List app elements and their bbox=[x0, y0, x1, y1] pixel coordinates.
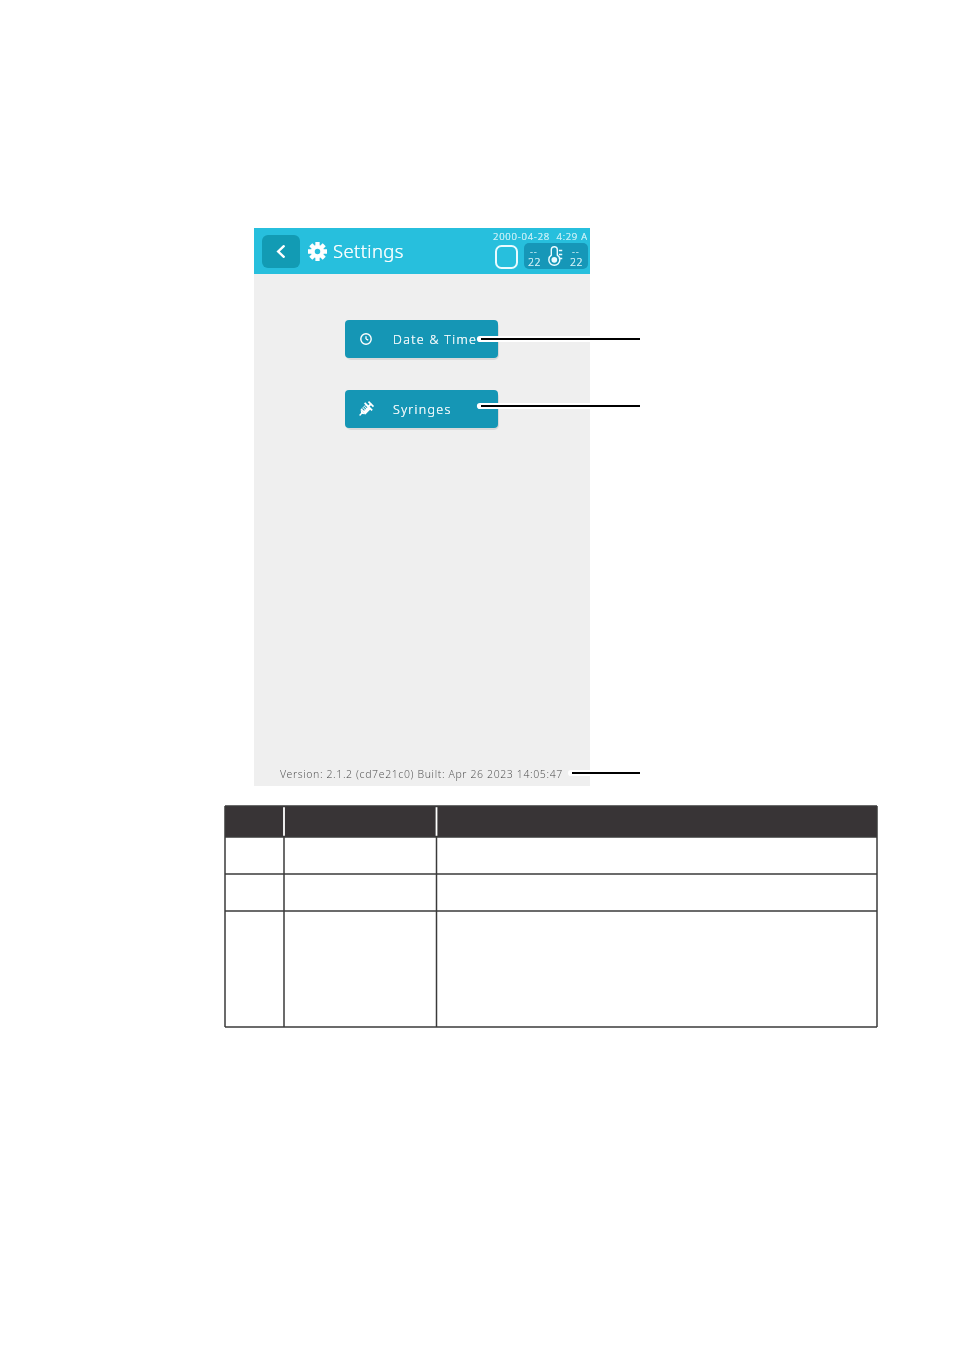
button[interactable]: Back bbox=[262, 235, 300, 268]
staticText: Settings bbox=[333, 238, 404, 263]
staticText: Syringes bbox=[393, 401, 452, 418]
staticText: 22 bbox=[528, 255, 542, 269]
staticText: 22 bbox=[570, 255, 584, 269]
staticText: Version: 2.1.2 (cd7e21c0) Built: Apr 26 … bbox=[280, 767, 563, 781]
button[interactable]: Syringes bbox=[345, 390, 498, 428]
staticText: 2000-04-28 4:29 A bbox=[493, 230, 588, 243]
staticText: -- bbox=[530, 245, 538, 257]
button[interactable]: Date & Time bbox=[345, 320, 498, 358]
staticText: -- bbox=[572, 245, 580, 257]
staticText: Date & Time bbox=[393, 331, 478, 348]
